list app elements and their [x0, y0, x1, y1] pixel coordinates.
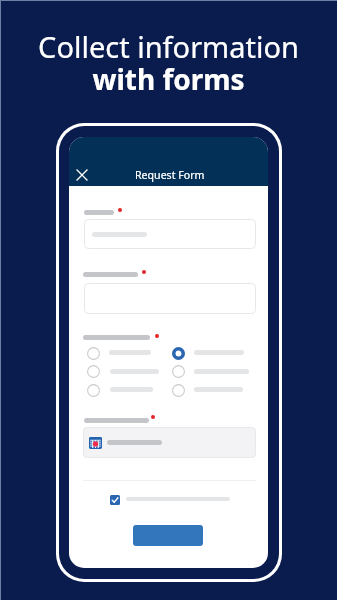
button[interactable]: Option	[170, 381, 245, 400]
button[interactable]	[84, 283, 256, 314]
button[interactable]: Option	[85, 344, 153, 363]
button[interactable]: Option	[170, 362, 251, 381]
staticText: with forms	[92, 60, 245, 98]
staticText: Collect information	[38, 27, 299, 66]
button[interactable]: Pick a date	[83, 427, 256, 458]
button[interactable]: Option	[85, 381, 154, 400]
staticText: Request Form	[135, 168, 205, 182]
button[interactable]: Submit	[133, 525, 203, 546]
button[interactable]: Option	[85, 362, 161, 381]
button[interactable]: Option	[170, 344, 246, 363]
button[interactable]: Accept terms	[110, 495, 120, 505]
button[interactable]: Close	[69, 162, 96, 188]
button[interactable]	[84, 219, 256, 249]
